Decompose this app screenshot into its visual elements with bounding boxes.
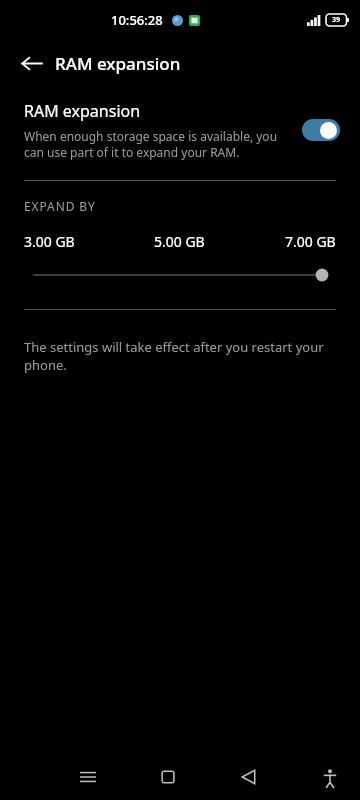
- button[interactable]: Expand by amount slider: [0, 263, 360, 287]
- staticText: 39: [332, 15, 341, 25]
- staticText: 3.00 GB: [24, 232, 75, 251]
- staticText: When enough storage space is available, …: [24, 128, 278, 160]
- staticText: The settings will take effect after you …: [24, 338, 344, 374]
- button[interactable]: Recent apps: [66, 755, 110, 799]
- staticText: 5.00 GB: [154, 232, 205, 251]
- button[interactable]: RAM expansion toggle: [302, 119, 340, 141]
- staticText: RAM expansion: [55, 52, 181, 75]
- button[interactable]: RAM expansion: [0, 100, 360, 160]
- button[interactable]: Back: [227, 755, 271, 799]
- staticText: 7.00 GB: [285, 232, 336, 251]
- staticText: EXPAND BY: [24, 198, 96, 214]
- staticText: RAM expansion: [24, 100, 141, 122]
- staticText: 10:56:28: [111, 11, 163, 29]
- button[interactable]: Accessibility: [308, 755, 352, 799]
- button[interactable]: Home: [146, 755, 190, 799]
- button[interactable]: Back: [10, 42, 52, 84]
